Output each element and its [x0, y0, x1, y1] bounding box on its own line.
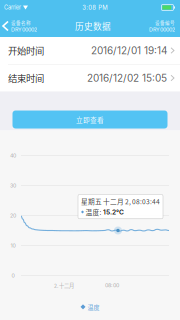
staticText: 08:00 [105, 282, 119, 289]
staticText: 10 [10, 242, 15, 249]
button[interactable]: 开始时间 [0, 37, 180, 64]
staticText: 20 [10, 212, 16, 219]
staticText: Carrier [4, 4, 21, 11]
staticText: 0 [11, 272, 14, 279]
button[interactable]: 设备编号 [149, 17, 180, 35]
staticText: DRY00002 [11, 26, 37, 33]
staticText: 2016/12/01 19:14 [91, 44, 167, 57]
staticText: 开始时间 [8, 44, 44, 57]
staticText: 设备编号 [155, 19, 175, 26]
staticText: 星期五 十二月 2, 08:03:44 [81, 196, 160, 206]
staticText: 温度 [87, 302, 99, 311]
staticText: 温度: [85, 207, 101, 217]
button[interactable]: 结束时间 [0, 64, 180, 91]
staticText: 3:08 PM [82, 4, 107, 11]
staticText: 15.2°C [103, 208, 124, 216]
staticText: 设备名称 [11, 19, 31, 26]
staticText: 2016/12/02 15:05 [87, 72, 167, 84]
staticText: 立即查看 [76, 115, 104, 124]
staticText: 40 [10, 152, 16, 159]
staticText: DRY00002 [149, 26, 175, 33]
staticText: 2. 十二月 [54, 281, 74, 289]
button[interactable]: 设备名称 [0, 17, 37, 35]
button[interactable]: 立即查看 [12, 110, 167, 128]
staticText: 历史数据 [75, 20, 111, 32]
staticText: 结束时间 [8, 71, 44, 85]
staticText: 30 [10, 182, 16, 189]
